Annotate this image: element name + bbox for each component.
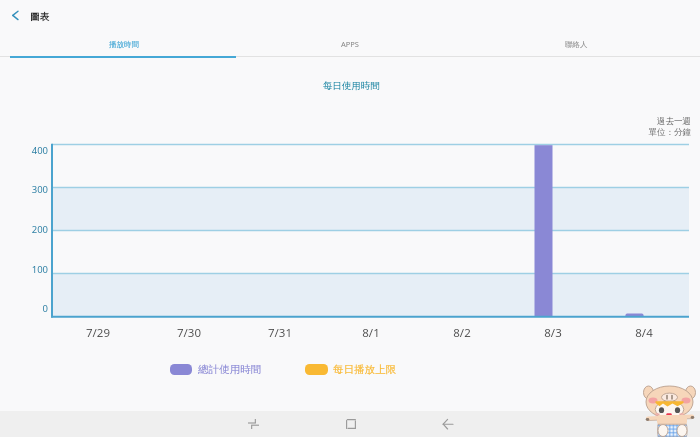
staticText: 單位：分鐘 (611, 127, 691, 138)
staticText: APPS (341, 39, 359, 49)
button[interactable]: 聯絡人 (463, 33, 689, 55)
staticText: 400 (16, 144, 48, 157)
staticText: 7/31 (250, 325, 310, 341)
button[interactable]: Recent apps (236, 412, 271, 436)
staticText: 圖表 (30, 11, 49, 23)
staticText: 8/3 (523, 325, 583, 341)
button[interactable]: 播放時間 (10, 33, 237, 55)
staticText: 100 (16, 263, 48, 276)
staticText: 8/4 (614, 325, 674, 341)
button[interactable]: 總計使用時間 (170, 363, 261, 376)
staticText: 播放時間 (109, 40, 139, 49)
staticText: 總計使用時間 (198, 363, 261, 376)
staticText: 每日播放上限 (333, 363, 396, 376)
button[interactable]: Back (430, 412, 465, 436)
staticText: 8/1 (341, 325, 401, 341)
button[interactable]: APPS (237, 33, 463, 55)
button[interactable]: Home (333, 412, 368, 436)
staticText: 聯絡人 (565, 40, 588, 49)
staticText: 0 (16, 302, 48, 315)
staticText: 每日使用時間 (323, 80, 380, 92)
staticText: 300 (16, 183, 48, 196)
button[interactable]: Back (3, 3, 28, 28)
staticText: 7/29 (68, 325, 128, 341)
button[interactable]: 每日播放上限 (305, 363, 396, 376)
staticText: 8/2 (432, 325, 492, 341)
staticText: 過去一週 (611, 116, 691, 127)
staticText: 7/30 (159, 325, 219, 341)
staticText: 200 (16, 223, 48, 236)
